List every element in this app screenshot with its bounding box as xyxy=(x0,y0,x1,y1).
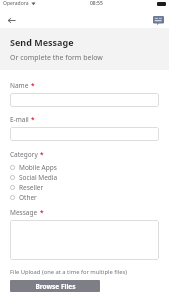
staticText: Other xyxy=(19,193,37,202)
button[interactable] xyxy=(10,220,159,260)
staticText: Category xyxy=(10,150,38,159)
staticText: Social Media xyxy=(19,173,58,182)
staticText: 08:55 xyxy=(90,0,103,7)
button[interactable]: Back xyxy=(4,13,18,27)
button[interactable]: Social Media xyxy=(10,172,159,182)
staticText: Operadora xyxy=(3,0,29,7)
staticText: File Upload (one at a time for multiple … xyxy=(10,268,128,276)
button[interactable]: App logo xyxy=(151,13,165,27)
button[interactable]: Reseller xyxy=(10,182,159,192)
staticText: Browse Files xyxy=(35,282,76,291)
staticText: Reseller xyxy=(19,183,44,192)
button[interactable] xyxy=(10,93,159,107)
staticText: Name xyxy=(10,81,29,90)
button[interactable]: Mobile Apps xyxy=(10,162,159,172)
staticText: Send Message xyxy=(10,36,74,48)
button[interactable] xyxy=(10,127,159,141)
staticText: Mobile Apps xyxy=(19,163,57,172)
staticText: * xyxy=(40,150,44,159)
staticText: * xyxy=(31,81,35,90)
staticText: E-mail xyxy=(10,115,29,124)
staticText: * xyxy=(31,115,35,124)
button[interactable]: Other xyxy=(10,192,159,202)
staticText: * xyxy=(40,208,44,217)
staticText: Or complete the form below xyxy=(10,53,103,63)
staticText: Message xyxy=(10,208,38,217)
button[interactable]: Browse Files xyxy=(10,280,100,292)
